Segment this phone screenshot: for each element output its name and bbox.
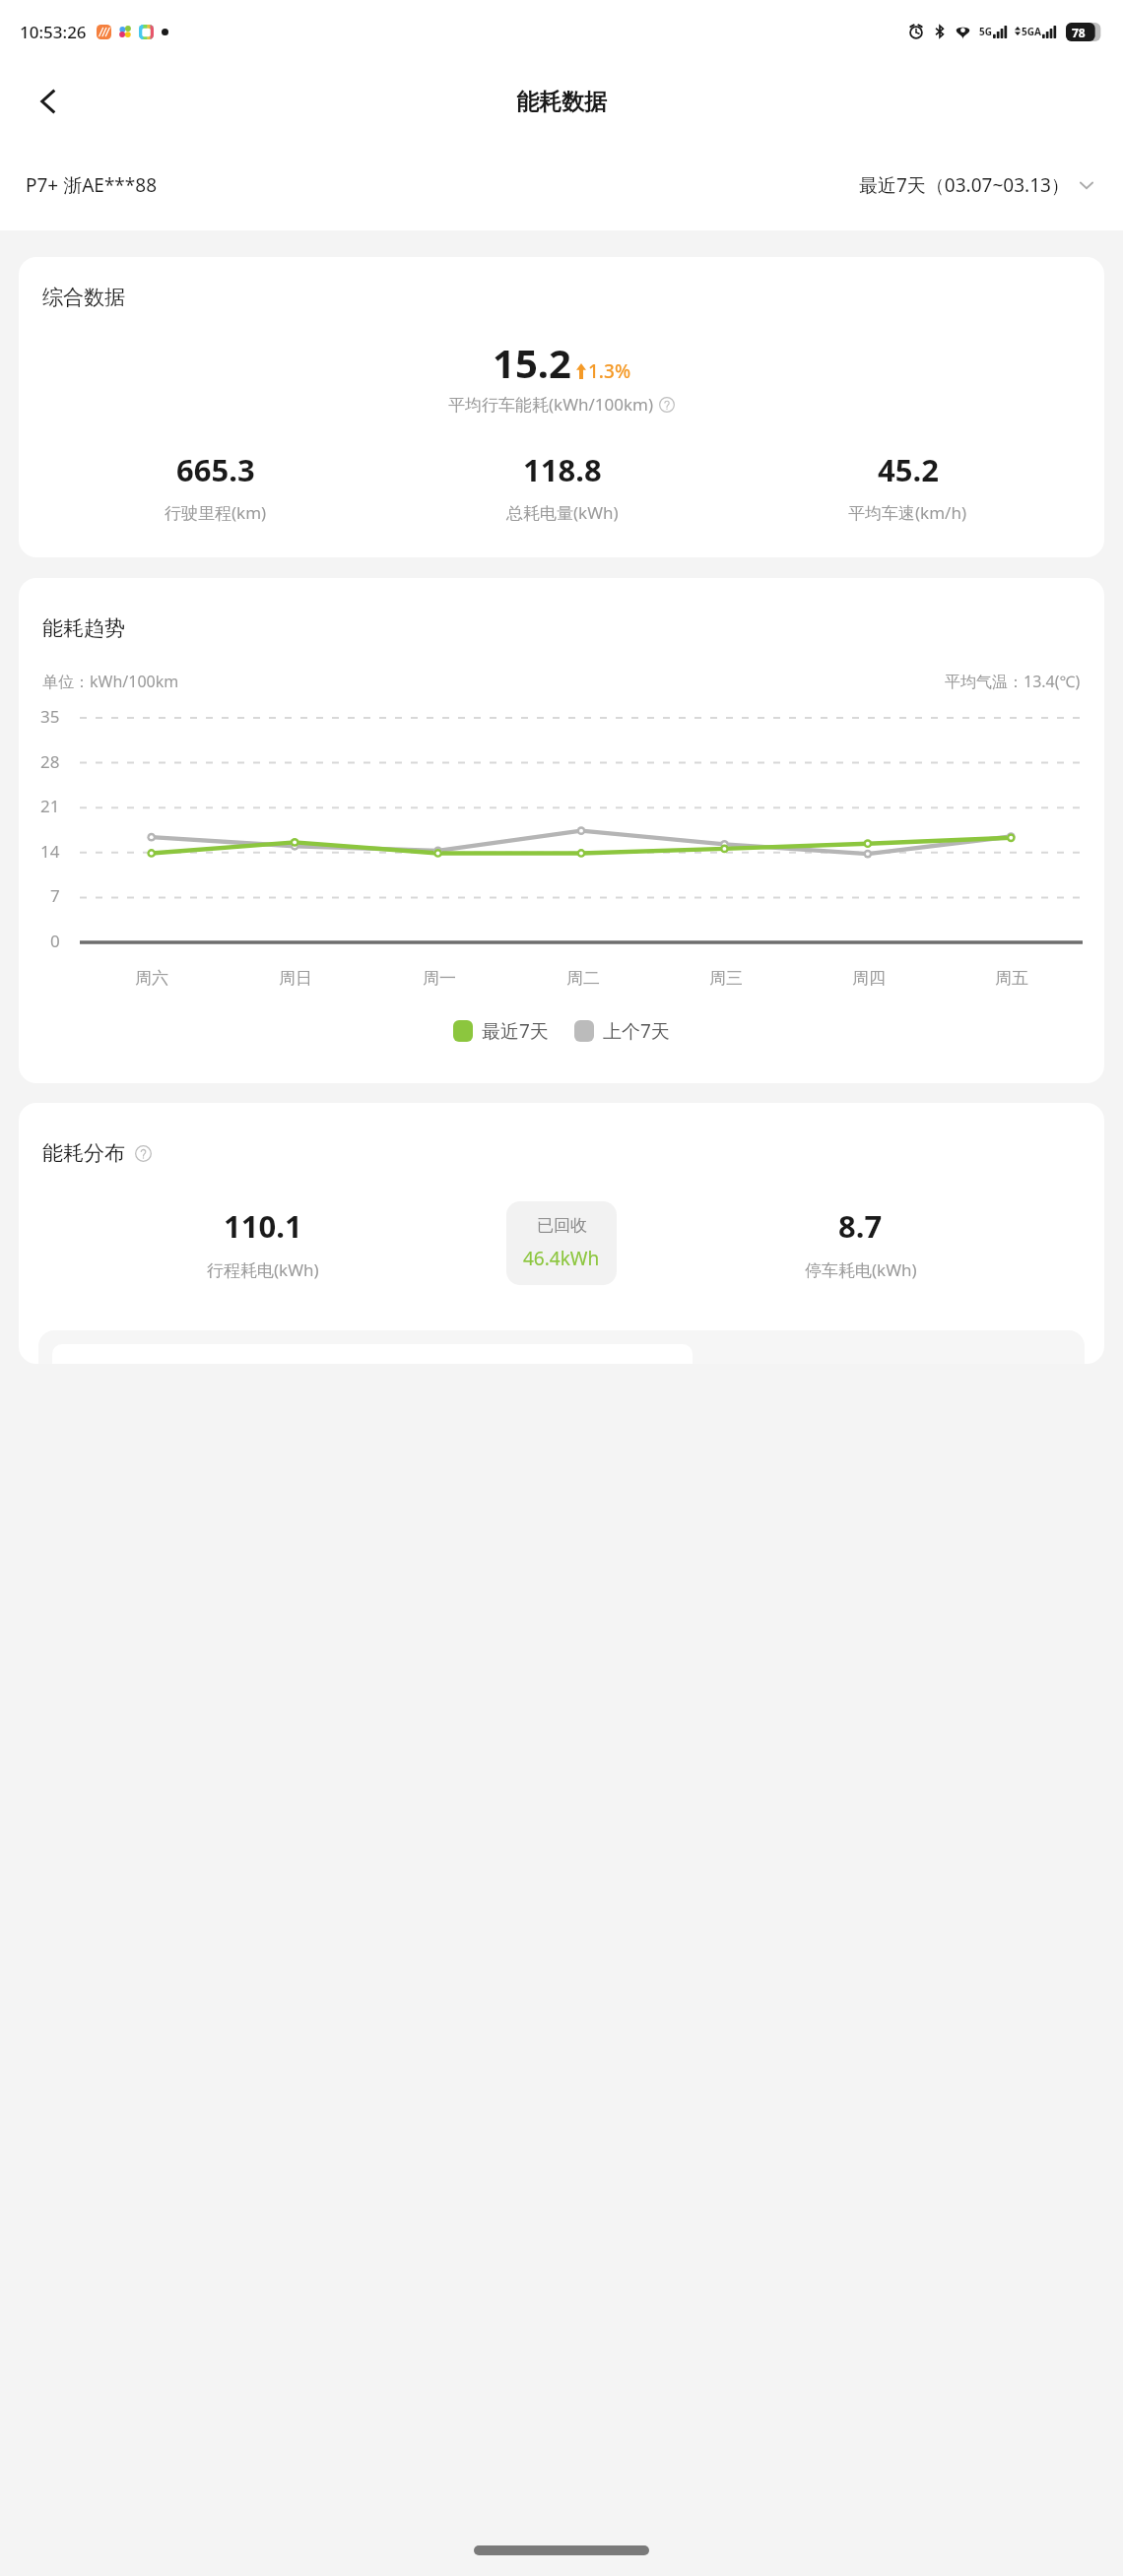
staticText: 行驶里程(km) — [165, 501, 267, 524]
button[interactable]: 能耗分布 — [19, 1103, 1104, 1364]
staticText: 周一 — [423, 968, 456, 989]
button[interactable]: 能耗趋势 — [19, 578, 1104, 1083]
staticText: 停车耗电(kWh) — [805, 1258, 917, 1281]
staticText: 21 — [40, 795, 60, 817]
staticText: 平均行车能耗(kWh/100km) — [448, 393, 654, 416]
staticText: 行程耗电(kWh) — [207, 1258, 319, 1281]
staticText: 周二 — [566, 968, 600, 989]
staticText: 46.4kWh — [523, 1246, 600, 1271]
button[interactable]: Back — [22, 75, 75, 128]
staticText: 1.3% — [588, 358, 631, 384]
staticText: 14 — [40, 840, 60, 863]
staticText: 7 — [50, 884, 60, 907]
staticText: 能耗分布 — [42, 1140, 125, 1166]
staticText: 平均车速(km/h) — [848, 501, 967, 524]
staticText: 已回收 — [537, 1215, 587, 1236]
staticText: 110.1 — [224, 1205, 302, 1247]
staticText: 周日 — [279, 968, 312, 989]
staticText: 平均气温：13.4(℃) — [945, 671, 1081, 692]
staticText: 35 — [40, 705, 60, 728]
button[interactable]: 综合数据 — [19, 257, 1104, 557]
staticText: 8.7 — [838, 1205, 883, 1247]
staticText: 总耗电量(kWh) — [506, 501, 619, 524]
staticText: P7+ 浙AE***88 — [26, 172, 158, 198]
staticText: 上个7天 — [603, 1018, 670, 1044]
staticText: 能耗数据 — [516, 88, 607, 116]
staticText: 周五 — [995, 968, 1028, 989]
staticText: 118.8 — [523, 449, 602, 490]
staticText: 15.2 — [493, 336, 571, 389]
staticText: 0 — [50, 930, 60, 952]
staticText: 单位：kWh/100km — [42, 671, 179, 692]
staticText: 最近7天（03.07~03.13） — [859, 172, 1070, 198]
staticText: 45.2 — [878, 449, 939, 490]
staticText: 28 — [40, 750, 60, 773]
staticText: 5G — [979, 25, 992, 38]
staticText: 最近7天 — [482, 1018, 549, 1044]
button[interactable]: 最近7天（03.07~03.13） — [853, 166, 1101, 204]
staticText: 5GA — [1022, 25, 1041, 38]
staticText: 10:53:26 — [20, 21, 87, 43]
staticText: 能耗趋势 — [42, 615, 125, 641]
staticText: 周四 — [852, 968, 886, 989]
staticText: 665.3 — [176, 449, 255, 490]
staticText: 周三 — [709, 968, 743, 989]
staticText: 周六 — [135, 968, 168, 989]
staticText: 综合数据 — [42, 285, 125, 310]
staticText: 78 — [1072, 25, 1086, 40]
